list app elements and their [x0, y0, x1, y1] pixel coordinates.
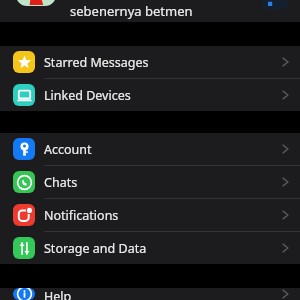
staticText: Help: [44, 288, 282, 300]
button[interactable]: Storage and Data: [0, 232, 300, 264]
staticText: Chats: [44, 174, 282, 191]
button[interactable]: Linked Devices: [0, 79, 300, 111]
button[interactable]: sebenernya betmen: [0, 0, 300, 22]
button[interactable]: Help: [0, 288, 300, 300]
button[interactable]: Account: [0, 133, 300, 165]
staticText: Linked Devices: [44, 87, 282, 104]
button[interactable]: Starred Messages: [0, 46, 300, 78]
button[interactable]: Notifications: [0, 199, 300, 231]
staticText: Storage and Data: [44, 240, 282, 257]
staticText: Starred Messages: [44, 54, 282, 71]
staticText: Account: [44, 141, 282, 158]
button[interactable]: QR code: [262, 0, 288, 10]
staticText: sebenernya betmen: [70, 2, 193, 20]
button[interactable]: Chats: [0, 166, 300, 198]
staticText: Notifications: [44, 207, 282, 224]
